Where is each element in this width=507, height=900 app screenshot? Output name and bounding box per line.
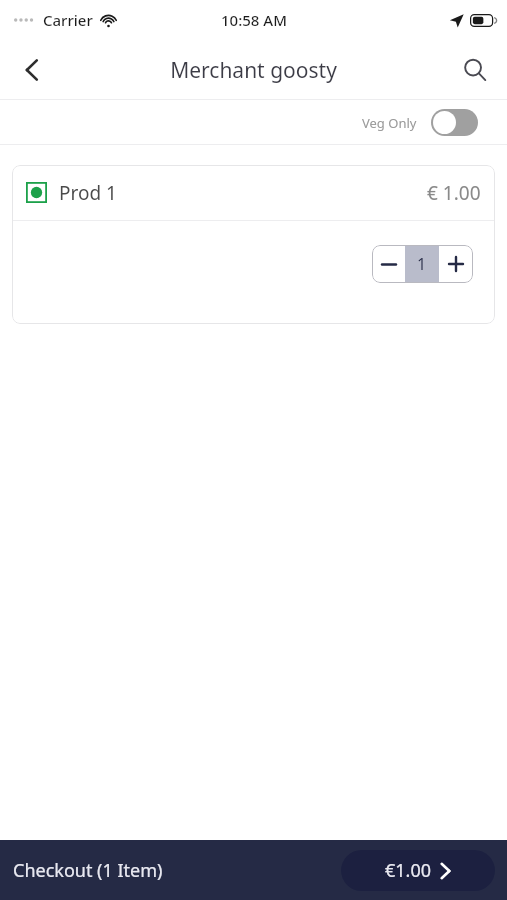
staticText: Checkout (1 Item) [13,858,163,883]
button[interactable]: Checkout (1 Item) [0,840,507,900]
button[interactable]: Search [451,46,499,94]
staticText: Merchant goosty [170,56,337,85]
button[interactable]: Veg Only [362,109,478,136]
button[interactable]: Prod 1 [12,165,495,324]
button[interactable]: €1.00 [341,850,495,891]
staticText: Carrier [43,10,93,30]
staticText: Veg Only [362,114,417,132]
staticText: 10:58 AM [221,10,287,30]
staticText: 1 [417,253,427,275]
button[interactable]: Increase quantity [439,245,473,283]
button[interactable]: Back [8,46,56,94]
button[interactable]: Decrease quantity [372,245,405,283]
staticText: Prod 1 [59,180,117,206]
staticText: €1.00 [385,858,432,883]
staticText: € 1.00 [427,180,481,206]
